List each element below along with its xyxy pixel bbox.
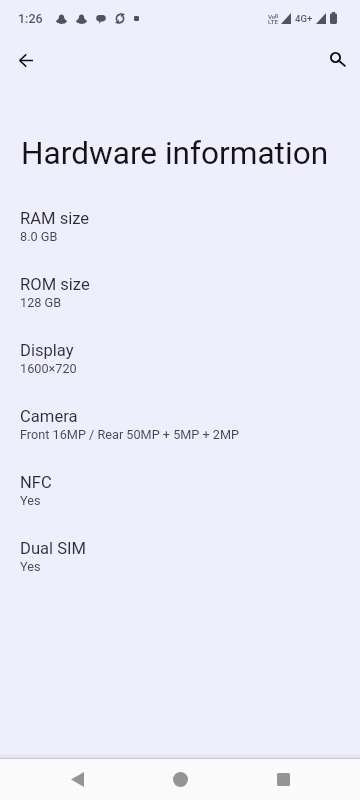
staticText: Dual SIM bbox=[20, 539, 87, 558]
staticText: Yes bbox=[20, 493, 41, 508]
button[interactable]: Display bbox=[0, 341, 360, 407]
staticText: 1:26 bbox=[18, 11, 43, 26]
staticText: 128 GB bbox=[20, 295, 62, 310]
button[interactable]: Search bbox=[316, 39, 359, 82]
staticText: ROM size bbox=[20, 275, 90, 294]
button[interactable]: Dual SIM bbox=[0, 539, 360, 605]
staticText: Yes bbox=[20, 559, 41, 574]
button[interactable]: Back bbox=[4, 39, 47, 82]
staticText: Camera bbox=[20, 407, 78, 426]
staticText: NFC bbox=[20, 473, 52, 492]
staticText: Display bbox=[20, 341, 74, 360]
staticText: 8.0 GB bbox=[20, 229, 58, 244]
button[interactable]: NFC bbox=[0, 473, 360, 539]
button[interactable]: Camera bbox=[0, 407, 360, 473]
button[interactable]: Home bbox=[156, 759, 204, 800]
staticText: Front 16MP / Rear 50MP + 5MP + 2MP bbox=[20, 427, 240, 442]
button[interactable]: Recent apps bbox=[259, 759, 307, 800]
staticText: 1600×720 bbox=[20, 361, 77, 376]
staticText: 4G+ bbox=[295, 13, 313, 24]
staticText: LTE bbox=[268, 18, 278, 25]
staticText: RAM size bbox=[20, 209, 90, 228]
button[interactable]: RAM size bbox=[0, 209, 360, 275]
staticText: Vo bbox=[268, 13, 276, 20]
button[interactable]: Back bbox=[53, 759, 101, 800]
button[interactable]: ROM size bbox=[0, 275, 360, 341]
staticText: Hardware information bbox=[21, 135, 329, 172]
